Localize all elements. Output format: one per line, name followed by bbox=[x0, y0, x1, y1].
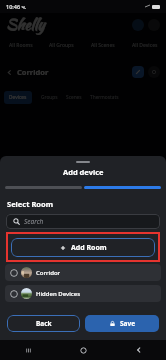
staticText: Save bbox=[120, 319, 136, 328]
staticText: 10:46 ч. bbox=[6, 3, 27, 10]
button[interactable]: Scenes bbox=[62, 91, 86, 104]
staticText: Shelly bbox=[6, 14, 45, 36]
button[interactable]: Back bbox=[6, 69, 13, 76]
staticText: All Groups bbox=[49, 42, 74, 49]
staticText: Select Room bbox=[7, 199, 54, 209]
staticText: Add Room bbox=[71, 243, 107, 253]
staticText: All Rooms bbox=[9, 42, 33, 49]
staticText: Back bbox=[36, 319, 52, 328]
staticText: Thermostats bbox=[90, 94, 119, 101]
staticText: Corridor bbox=[17, 67, 49, 77]
button[interactable]: Back bbox=[111, 340, 166, 360]
button[interactable]: All Rooms bbox=[0, 37, 41, 54]
staticText: Corridor bbox=[36, 269, 61, 277]
button[interactable]: More bbox=[148, 66, 160, 78]
button[interactable]: Save bbox=[85, 315, 159, 332]
button[interactable]: Notifications bbox=[132, 19, 144, 31]
button[interactable]: Profile bbox=[148, 19, 160, 31]
button[interactable]: Devices bbox=[4, 91, 32, 104]
button[interactable]: Search bbox=[6, 214, 160, 229]
staticText: Add device bbox=[63, 167, 104, 177]
staticText: Hidden Devices bbox=[36, 290, 81, 298]
staticText: Search bbox=[24, 217, 44, 226]
button[interactable]: Corridor bbox=[5, 264, 161, 281]
button[interactable]: Thermostats bbox=[86, 91, 123, 104]
button[interactable]: Recent apps bbox=[0, 340, 56, 360]
button[interactable]: Add Room bbox=[11, 238, 155, 257]
button[interactable]: Home bbox=[56, 340, 111, 360]
button[interactable]: Edit bbox=[132, 66, 144, 78]
button[interactable]: Hidden Devices bbox=[5, 285, 161, 302]
staticText: Devices bbox=[9, 94, 27, 101]
staticText: Scenes bbox=[66, 94, 82, 101]
staticText: All Scenes bbox=[91, 42, 115, 49]
button[interactable]: Groups bbox=[37, 91, 62, 104]
button[interactable]: All Devices bbox=[124, 37, 166, 54]
button[interactable]: Back bbox=[7, 315, 80, 332]
staticText: All Devices bbox=[132, 42, 158, 49]
button[interactable]: All Scenes bbox=[82, 37, 124, 54]
staticText: Groups bbox=[41, 94, 58, 101]
button[interactable]: All Groups bbox=[41, 37, 82, 54]
